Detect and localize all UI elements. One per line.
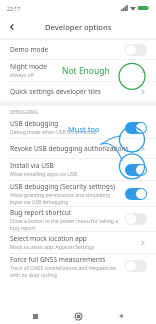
- staticText: Always off: [10, 72, 34, 79]
- staticText: Show a button in the power menu for taki…: [10, 218, 119, 231]
- button[interactable]: Back: [5, 20, 19, 34]
- staticText: 22:17: [7, 5, 21, 12]
- staticText: Demo mode: [10, 45, 49, 54]
- staticText: Quick settings developer tiles: [10, 87, 101, 96]
- staticText: Revoke USB debugging authorizations: [10, 144, 129, 153]
- button[interactable]: Demo mode: [0, 40, 156, 59]
- staticText: Allow installing apps via USB: [10, 171, 77, 178]
- staticText: Must too: [68, 124, 100, 134]
- button[interactable]: Select mock location app: [0, 232, 156, 253]
- button[interactable]: Bug report shortcut: [0, 207, 156, 231]
- staticText: Track all GNSS constellations and freque…: [10, 265, 119, 278]
- button[interactable]: Quick settings developer tiles: [0, 82, 156, 101]
- button[interactable]: Home: [70, 308, 86, 324]
- staticText: Force full GNSS measurements: [10, 255, 106, 264]
- button[interactable]: Install via USB: [0, 159, 156, 180]
- staticText: Bug report shortcut: [10, 208, 72, 217]
- staticText: USB debugging (Security settings): [10, 182, 116, 191]
- staticText: Night mode: [10, 62, 47, 71]
- button[interactable]: Revoke USB debugging authorizations: [0, 139, 156, 158]
- button[interactable]: USB debugging: [0, 117, 156, 138]
- staticText: Mock location app: Appium Settings: [10, 244, 95, 251]
- staticText: Developer options: [45, 22, 112, 32]
- button[interactable]: Force full GNSS measurements: [0, 254, 156, 278]
- staticText: Install via USB: [10, 161, 54, 170]
- button[interactable]: Back: [113, 308, 129, 324]
- staticText: Select mock location app: [10, 234, 87, 243]
- button[interactable]: Recents: [27, 308, 43, 324]
- button[interactable]: USB debugging (Security settings): [0, 181, 156, 206]
- button[interactable]: Night mode: [0, 60, 156, 81]
- staticText: Allow granting permissions and simulatin…: [10, 192, 119, 205]
- staticText: Debug mode when USB is connected: [10, 129, 97, 136]
- staticText: DEBUGGING: [10, 109, 38, 115]
- staticText: USB debugging: [10, 119, 59, 128]
- staticText: Not Enough: [62, 65, 110, 77]
